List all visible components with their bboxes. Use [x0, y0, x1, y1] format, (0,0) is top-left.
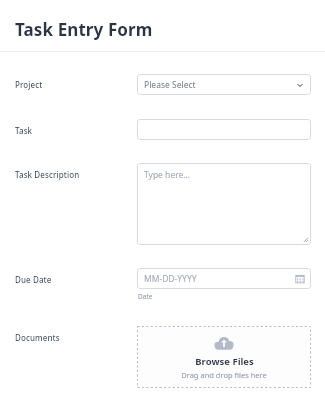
other: Upload files	[214, 336, 234, 351]
staticText: Due Date	[15, 274, 52, 285]
staticText: Browse Files	[195, 355, 254, 368]
button[interactable]	[137, 119, 311, 140]
button[interactable]: Open calendar	[295, 274, 305, 284]
button[interactable]: Type here...	[137, 163, 311, 245]
staticText: Date	[138, 292, 153, 301]
staticText: Task Entry Form	[15, 18, 153, 41]
staticText: Type here...	[144, 169, 191, 181]
staticText: Project	[15, 79, 43, 90]
button[interactable]: MM-DD-YYYY	[137, 268, 311, 289]
button[interactable]: Upload files	[137, 326, 311, 388]
staticText: Documents	[15, 332, 60, 343]
staticText: Drag and drop files here	[181, 370, 267, 380]
staticText: MM-DD-YYYY	[144, 273, 197, 285]
staticText: Task	[15, 125, 33, 136]
staticText: Task Description	[15, 169, 80, 180]
button[interactable]: Please Select	[137, 74, 311, 95]
staticText: Please Select	[144, 79, 196, 91]
